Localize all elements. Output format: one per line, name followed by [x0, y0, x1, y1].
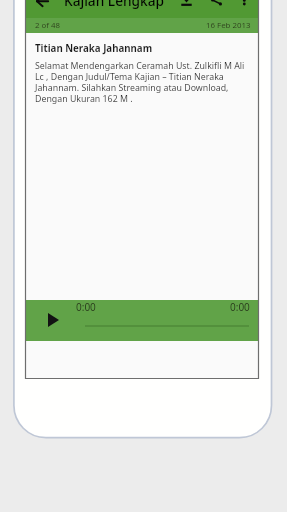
button[interactable]: More options — [232, 0, 256, 18]
button[interactable]: Share — [205, 0, 229, 18]
button[interactable]: Play — [41, 308, 65, 332]
staticText: Kajian Lengkap — [64, 0, 165, 9]
staticText: 0:00 — [230, 300, 250, 314]
button[interactable]: Back — [30, 0, 54, 18]
staticText: 0:00 — [76, 300, 96, 314]
staticText: Titian Neraka Jahannam — [35, 42, 153, 55]
staticText: 2 of 48 — [35, 20, 61, 31]
staticText: Selamat Mendengarkan Ceramah Ust. Zulkif… — [35, 60, 245, 105]
staticText: 16 Feb 2013 — [206, 20, 251, 31]
button[interactable]: Download — [175, 0, 199, 18]
